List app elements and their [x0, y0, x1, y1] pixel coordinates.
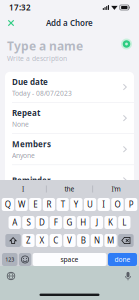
staticText: Q — [5, 199, 11, 210]
staticText: R — [46, 199, 51, 210]
button[interactable]: N — [91, 234, 103, 247]
button[interactable] — [5, 234, 21, 247]
button[interactable]: V — [63, 234, 76, 247]
button[interactable]: J — [91, 216, 103, 229]
staticText: Reminder — [12, 175, 51, 186]
button[interactable]: K — [104, 216, 117, 229]
staticText: H — [80, 217, 86, 228]
staticText: E — [33, 199, 37, 210]
staticText: Repeat — [12, 108, 40, 118]
button[interactable]: Z — [22, 234, 35, 247]
staticText: S — [26, 217, 30, 228]
button[interactable]: W — [15, 198, 28, 211]
staticText: I'm — [111, 185, 120, 193]
staticText: the — [64, 185, 74, 193]
button[interactable]: D — [36, 216, 48, 229]
button[interactable]: Reminder — [5, 165, 134, 196]
button[interactable]: G — [63, 216, 76, 229]
button[interactable]: F — [50, 216, 62, 229]
staticText: K — [108, 217, 113, 228]
staticText: C — [53, 235, 58, 246]
button[interactable]: Q — [2, 198, 14, 211]
button[interactable]: O — [111, 198, 124, 211]
staticText: O — [114, 199, 120, 210]
staticText: W — [18, 199, 25, 210]
button[interactable]: Close — [4, 16, 18, 30]
button[interactable]: E — [29, 198, 41, 211]
button[interactable]: U — [84, 198, 96, 211]
button[interactable] — [118, 234, 134, 247]
button[interactable]: 123 — [2, 253, 17, 266]
staticText: P — [129, 199, 134, 210]
button[interactable]: S — [22, 216, 35, 229]
staticText: M — [107, 235, 114, 246]
staticText: 123 — [5, 256, 14, 263]
staticText: B — [81, 235, 86, 246]
staticText: G — [66, 217, 72, 228]
staticText: U — [87, 199, 93, 210]
staticText: Z — [26, 235, 31, 246]
staticText: V — [67, 235, 72, 246]
button[interactable]: Repeat — [5, 103, 134, 133]
staticText: Due date — [12, 77, 48, 87]
button[interactable]: Y — [70, 198, 82, 211]
staticText: None — [12, 120, 29, 129]
staticText: I — [22, 185, 24, 193]
staticText: Today - 08/07/2023 — [12, 89, 72, 98]
button[interactable]: R — [43, 198, 55, 211]
button[interactable]: P — [125, 198, 137, 211]
button[interactable]: space — [33, 253, 107, 266]
staticText: T — [61, 199, 65, 210]
staticText: 17:32 — [9, 2, 31, 13]
button[interactable]: M — [104, 234, 117, 247]
button[interactable] — [19, 253, 31, 266]
staticText: D — [39, 217, 45, 228]
staticText: L — [122, 217, 126, 228]
staticText: Add a Chore — [46, 18, 93, 28]
button[interactable]: X — [36, 234, 48, 247]
button[interactable]: Due date — [5, 72, 134, 102]
button[interactable]: A — [9, 216, 21, 229]
button[interactable]: B — [77, 234, 89, 247]
button[interactable]: I — [98, 198, 110, 211]
staticText: space — [61, 255, 79, 264]
button[interactable]: C — [50, 234, 62, 247]
staticText: Write a description — [7, 54, 67, 63]
staticText: done — [114, 255, 130, 264]
button[interactable]: T — [56, 198, 69, 211]
button[interactable]: Change keyboard — [7, 272, 15, 280]
button[interactable]: Members — [5, 134, 134, 164]
staticText: F — [54, 217, 58, 228]
button[interactable]: L — [118, 216, 130, 229]
staticText: I — [102, 199, 105, 210]
button[interactable]: done — [108, 253, 137, 266]
button[interactable]: Dictate — [124, 271, 132, 281]
staticText: J — [96, 217, 98, 228]
staticText: Members — [12, 139, 51, 149]
staticText: N — [94, 235, 100, 246]
staticText: Y — [74, 199, 79, 210]
button[interactable]: H — [77, 216, 89, 229]
staticText: Type a name — [7, 38, 83, 54]
staticText: X — [40, 235, 45, 246]
staticText: Anyone — [12, 151, 35, 160]
staticText: A — [12, 217, 17, 228]
